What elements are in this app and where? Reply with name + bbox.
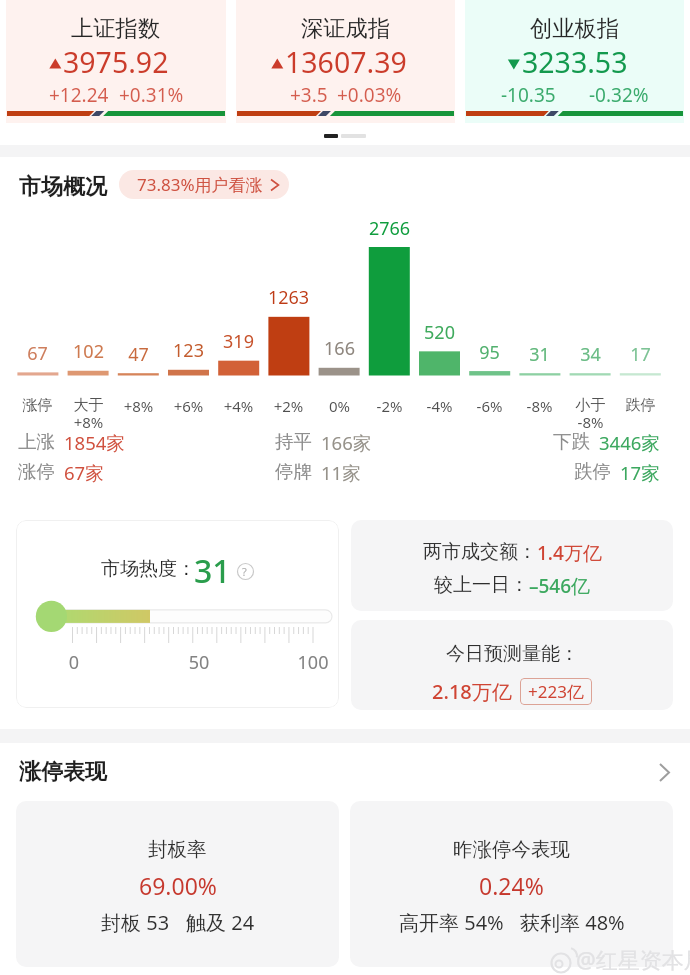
button[interactable]: 深证成指 bbox=[236, 0, 455, 123]
staticText: -0.32% bbox=[589, 82, 649, 108]
staticText: 今日预测量能： bbox=[446, 642, 579, 666]
staticText: 上涨 bbox=[18, 430, 55, 453]
staticText: 3975.92 bbox=[63, 43, 169, 82]
staticText: -6% bbox=[464, 396, 515, 416]
button[interactable]: 今日预测量能： bbox=[351, 620, 673, 710]
staticText: 67家 bbox=[64, 460, 104, 485]
staticText: -8% bbox=[514, 396, 565, 416]
staticText: 166 bbox=[309, 336, 370, 361]
staticText: 较上一日： bbox=[434, 573, 529, 597]
staticText: +223亿 bbox=[528, 680, 584, 703]
staticText: 涨停表现 bbox=[19, 758, 107, 786]
staticText: 上证指数 bbox=[71, 15, 161, 43]
staticText: 封板率 bbox=[148, 837, 207, 862]
staticText: 17家 bbox=[620, 460, 660, 485]
staticText: 下跌 bbox=[553, 430, 590, 453]
staticText: 涨停 bbox=[18, 460, 55, 483]
staticText: 两市成交额： bbox=[423, 540, 537, 564]
staticText: 0.24% bbox=[479, 870, 544, 901]
staticText: +6% bbox=[163, 396, 214, 416]
staticText: 73.83%用户看涨 bbox=[137, 173, 263, 196]
staticText: 1854家 bbox=[64, 430, 125, 455]
button[interactable]: 两市成交额： bbox=[351, 520, 673, 611]
staticText: 3233.53 bbox=[522, 43, 628, 82]
staticText: 3446家 bbox=[599, 430, 660, 455]
staticText: 触及 24 bbox=[186, 909, 255, 936]
staticText: +12.24 bbox=[49, 82, 109, 108]
staticText: 高开率 54% bbox=[399, 909, 504, 936]
staticText: ? bbox=[242, 564, 247, 579]
staticText: 涨停 bbox=[12, 396, 63, 415]
staticText: 17 bbox=[610, 342, 671, 367]
button[interactable]: 封板率 bbox=[16, 801, 339, 967]
staticText: +4% bbox=[213, 396, 264, 416]
staticText: 小于 -8% bbox=[565, 396, 616, 433]
staticText: 13607.39 bbox=[285, 43, 407, 82]
staticText: -4% bbox=[414, 396, 465, 416]
staticText: +0.03% bbox=[337, 82, 402, 108]
staticText: 0% bbox=[314, 396, 365, 416]
staticText: +8% bbox=[113, 396, 164, 416]
button[interactable]: 涨停表现 bbox=[0, 743, 690, 801]
staticText: 1263 bbox=[258, 285, 319, 310]
button[interactable]: 市场热度： bbox=[16, 520, 339, 708]
staticText: 持平 bbox=[275, 430, 312, 453]
other: More bbox=[659, 763, 670, 782]
staticText: 封板 53 bbox=[101, 909, 170, 936]
staticText: 31 bbox=[194, 549, 231, 593]
staticText: 昨涨停今表现 bbox=[453, 837, 570, 862]
staticText: -2% bbox=[364, 396, 415, 416]
staticText: 深证成指 bbox=[301, 15, 391, 43]
staticText: 47 bbox=[108, 342, 169, 367]
staticText: 67 bbox=[7, 341, 68, 366]
staticText: –546亿 bbox=[529, 573, 591, 599]
staticText: 跌停 bbox=[615, 396, 666, 415]
staticText: 100 bbox=[293, 650, 333, 675]
staticText: 创业板指 bbox=[530, 15, 620, 43]
staticText: 319 bbox=[208, 329, 269, 354]
staticText: 520 bbox=[409, 320, 470, 345]
staticText: 34 bbox=[560, 342, 621, 367]
staticText: 50 bbox=[179, 650, 219, 675]
staticText: +3.5 bbox=[290, 82, 328, 108]
staticText: 2766 bbox=[359, 216, 420, 241]
button[interactable]: 昨涨停今表现 bbox=[350, 801, 673, 967]
staticText: 获利率 48% bbox=[520, 909, 625, 936]
staticText: 69.00% bbox=[139, 870, 217, 901]
staticText: 2.18万亿 bbox=[432, 678, 512, 705]
staticText: 停牌 bbox=[275, 460, 312, 483]
staticText: @红星资本局 bbox=[576, 944, 690, 974]
button[interactable]: 73.83%用户看涨 bbox=[119, 170, 289, 199]
staticText: 95 bbox=[459, 340, 520, 365]
button[interactable]: 上证指数 bbox=[6, 0, 226, 123]
staticText: 11家 bbox=[321, 460, 361, 485]
staticText: 大于 +8% bbox=[63, 396, 114, 433]
staticText: 市场概况 bbox=[19, 173, 107, 201]
staticText: 0 bbox=[54, 650, 94, 675]
staticText: 31 bbox=[509, 342, 570, 367]
staticText: +0.31% bbox=[119, 82, 184, 108]
staticText: -10.35 bbox=[501, 82, 556, 108]
button[interactable]: 创业板指 bbox=[465, 0, 684, 123]
staticText: 跌停 bbox=[574, 460, 611, 483]
staticText: +2% bbox=[263, 396, 314, 416]
staticText: 102 bbox=[58, 339, 119, 364]
staticText: 市场热度： bbox=[101, 557, 196, 581]
staticText: 123 bbox=[158, 338, 219, 363]
staticText: 166家 bbox=[321, 430, 372, 455]
staticText: 1.4万亿 bbox=[537, 540, 602, 566]
